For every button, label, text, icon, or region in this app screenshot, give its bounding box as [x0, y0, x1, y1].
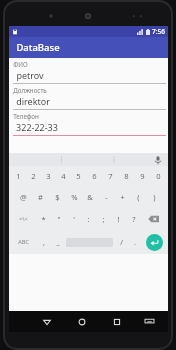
button[interactable]: ABC: [11, 231, 36, 253]
staticText: 6: [92, 171, 97, 181]
staticText: 4: [61, 171, 66, 181]
button[interactable]: &: [82, 186, 98, 208]
button[interactable]: ): [146, 186, 162, 208]
button[interactable]: ФИО: [9, 58, 168, 84]
button[interactable]: #: [32, 186, 49, 208]
button[interactable]: 8: [118, 166, 134, 186]
button[interactable]: 9: [134, 166, 150, 186]
staticText: ?: [132, 214, 136, 224]
staticText: ): [153, 192, 156, 202]
staticText: (: [137, 192, 140, 202]
staticText: .: [134, 237, 136, 247]
staticText: $: [55, 192, 60, 202]
staticText: !: [117, 214, 120, 224]
button[interactable]: :: [81, 208, 96, 230]
button[interactable]: .: [128, 231, 142, 253]
button[interactable]: (: [130, 186, 146, 208]
button[interactable]: Телефон: [9, 110, 168, 136]
button[interactable]: _: [51, 231, 65, 253]
button[interactable]: ': [66, 208, 81, 230]
button[interactable]: Должность: [9, 84, 168, 110]
staticText: Телефон: [13, 112, 39, 120]
staticText: ': [73, 214, 75, 224]
staticText: %: [71, 192, 78, 202]
staticText: _: [56, 237, 60, 247]
button[interactable]: 0: [150, 166, 166, 186]
button[interactable]: ;: [96, 208, 111, 230]
staticText: petrov: [16, 69, 44, 81]
button[interactable]: Voice input: [153, 155, 163, 165]
staticText: 322-22-33: [16, 121, 58, 133]
button[interactable]: %: [66, 186, 82, 208]
staticText: ФИО: [13, 60, 28, 68]
button[interactable]: =\<: [11, 208, 35, 230]
button[interactable]: @: [15, 186, 32, 208]
staticText: #: [38, 192, 43, 202]
button[interactable]: DataBase: [9, 37, 168, 58]
button[interactable]: ?: [126, 208, 141, 230]
button[interactable]: 1: [11, 166, 26, 186]
staticText: Должность: [13, 86, 47, 94]
button[interactable]: +: [114, 186, 130, 208]
button[interactable]: 5: [71, 166, 86, 186]
staticText: -: [105, 192, 108, 202]
staticText: ": [57, 214, 61, 224]
button[interactable]: Recent apps: [99, 311, 134, 332]
button[interactable]: -: [98, 186, 114, 208]
staticText: 1: [16, 171, 21, 181]
staticText: =\<: [19, 215, 28, 223]
button[interactable]: 6: [86, 166, 102, 186]
staticText: 9: [140, 171, 145, 181]
button[interactable]: 7: [102, 166, 118, 186]
button[interactable]: ,: [36, 231, 51, 253]
staticText: @: [20, 192, 27, 202]
staticText: ;: [102, 214, 105, 224]
staticText: 8: [124, 171, 129, 181]
button[interactable]: Home: [64, 311, 99, 332]
button[interactable]: Hide keyboard: [134, 311, 164, 332]
staticText: ABC: [18, 238, 29, 246]
staticText: 5: [76, 171, 81, 181]
button[interactable]: 4: [56, 166, 71, 186]
staticText: 7:56: [152, 27, 165, 36]
staticText: ,: [43, 237, 45, 247]
button[interactable]: !: [111, 208, 126, 230]
button[interactable]: 2: [26, 166, 41, 186]
staticText: DataBase: [16, 41, 60, 54]
button[interactable]: ": [51, 208, 66, 230]
staticText: +: [120, 192, 125, 202]
staticText: 3: [46, 171, 51, 181]
button[interactable]: Back: [29, 311, 64, 332]
staticText: direktor: [16, 95, 50, 107]
staticText: 2: [31, 171, 36, 181]
button[interactable]: *: [35, 208, 51, 230]
button[interactable]: /: [114, 231, 128, 253]
button[interactable]: Backspace: [141, 208, 166, 230]
button[interactable]: Enter: [146, 234, 163, 251]
button[interactable]: 3: [41, 166, 56, 186]
staticText: *: [41, 214, 46, 224]
staticText: /: [120, 237, 123, 247]
staticText: 0: [156, 171, 161, 181]
staticText: &: [87, 192, 93, 202]
staticText: 7: [108, 171, 113, 181]
button[interactable]: $: [49, 186, 66, 208]
staticText: :: [87, 214, 90, 224]
